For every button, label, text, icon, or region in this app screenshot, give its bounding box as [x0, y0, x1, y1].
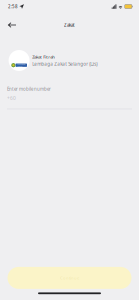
staticText: Zakat Fitrah: [32, 54, 55, 60]
staticText: Continue: [60, 275, 79, 281]
button[interactable]: Continue: [7, 267, 131, 289]
staticText: +60: [7, 95, 16, 101]
button[interactable]: Back: [0, 17, 24, 33]
staticText: Lembaga Zakat Selangor (Lzs): [32, 61, 97, 67]
staticText: LEMBAGA ZAKAT: [17, 63, 25, 68]
staticText: Enter mobile number: [7, 86, 51, 92]
staticText: Zakat: [64, 22, 75, 28]
staticText: 2:58: [8, 3, 18, 9]
